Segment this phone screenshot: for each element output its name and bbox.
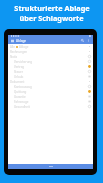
staticText: Rechnungen xyxy=(10,50,28,54)
button[interactable]: Gesundheit xyxy=(8,104,93,109)
staticText: Strukturierte Ablage xyxy=(14,3,90,13)
button[interactable]: Urlaub xyxy=(8,74,93,79)
button[interactable]: Versicherung xyxy=(8,59,93,64)
staticText: Vertrag xyxy=(14,65,25,69)
button[interactable]: Garantie xyxy=(8,94,93,99)
button[interactable]: Alle xyxy=(8,44,93,49)
button[interactable]: Notiz xyxy=(8,54,93,59)
staticText: über Schlagworte xyxy=(19,13,84,23)
button[interactable]: Open navigation menu xyxy=(10,38,15,43)
button[interactable]: Bottom navigation xyxy=(8,164,93,169)
staticText: Notiz xyxy=(10,55,18,59)
button[interactable]: Fahrzeuge xyxy=(8,99,93,104)
staticText: Steuer xyxy=(14,70,23,74)
button[interactable]: Rechnungen xyxy=(8,49,93,54)
button[interactable]: Kontoauszug xyxy=(8,84,93,89)
staticText: Dokument xyxy=(10,80,25,84)
staticText: Fahrzeuge xyxy=(14,100,29,104)
button[interactable]: Search xyxy=(80,38,85,43)
button[interactable]: More options xyxy=(86,38,91,43)
staticText: Urlaub xyxy=(14,75,24,79)
staticText: Alle xyxy=(10,45,15,49)
staticText: Kontoauszug xyxy=(14,85,32,89)
button[interactable]: Quittung xyxy=(8,89,93,94)
staticText: Gesundheit xyxy=(14,105,30,109)
staticText: Versicherung xyxy=(14,60,32,64)
staticText: Garantie xyxy=(14,95,26,99)
button[interactable]: Vertrag xyxy=(8,64,93,69)
button[interactable]: Dokument xyxy=(8,79,93,84)
staticText: Ablage xyxy=(19,45,29,49)
button[interactable]: Steuer xyxy=(8,69,93,74)
staticText: Ablage xyxy=(16,39,27,43)
staticText: Quittung xyxy=(14,90,27,94)
